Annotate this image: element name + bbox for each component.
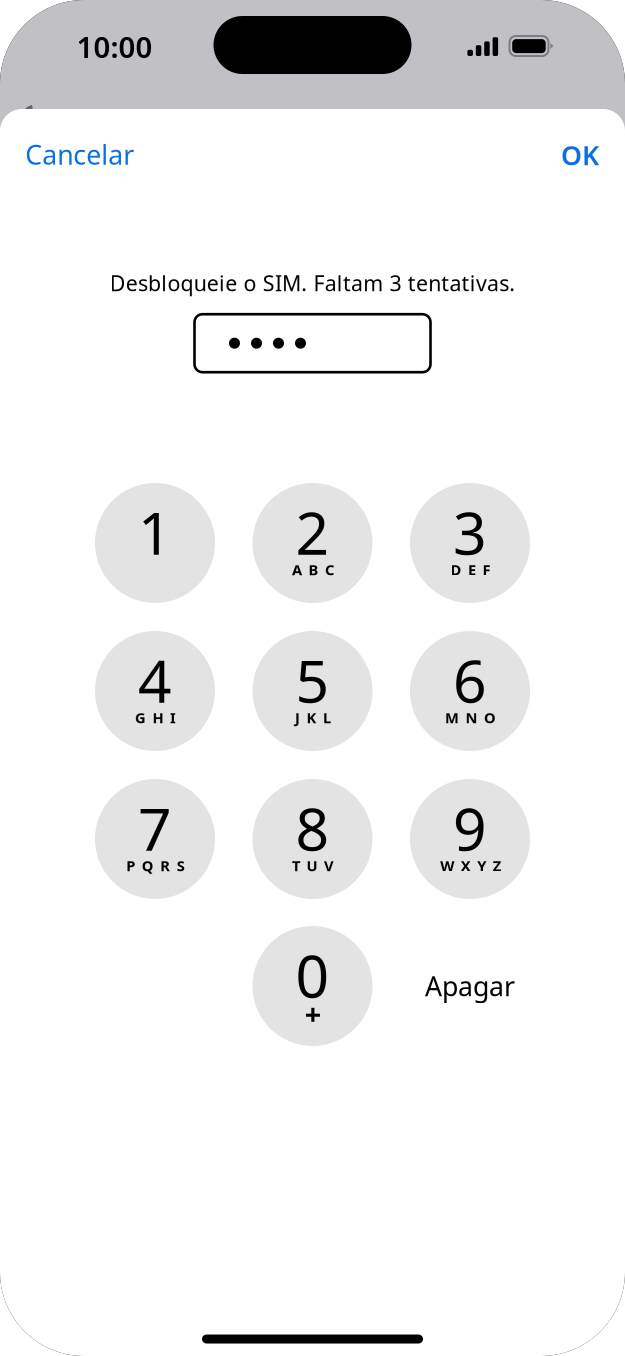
staticText: 9	[453, 789, 487, 867]
staticText: OK	[561, 137, 599, 173]
staticText: GHI	[135, 708, 176, 727]
staticText: MNO	[445, 708, 496, 727]
staticText: 7	[138, 789, 172, 867]
staticText: JKL	[295, 708, 331, 727]
button[interactable]: 2	[252, 483, 372, 603]
staticText: TUV	[292, 856, 334, 875]
staticText: 0	[295, 936, 329, 1014]
button[interactable]: 0	[252, 926, 372, 1046]
button[interactable]: Cancelar	[25, 125, 161, 183]
staticText: Apagar	[425, 968, 515, 1004]
staticText: 2	[295, 493, 329, 571]
staticText: Cancelar	[25, 137, 134, 172]
staticText: PQRS	[126, 856, 185, 875]
staticText: ABC	[292, 560, 334, 579]
button[interactable]: OK	[523, 126, 599, 184]
staticText: 6	[453, 641, 487, 719]
staticText: +	[304, 994, 321, 1033]
button[interactable]: 7	[95, 779, 215, 899]
staticText: 3	[453, 493, 487, 571]
staticText: 8	[295, 789, 329, 867]
staticText: Desbloqueie o SIM. Faltam 3 tentativas.	[110, 269, 515, 297]
staticText: 10:00	[76, 27, 152, 66]
staticText: 5	[295, 641, 329, 719]
button[interactable]: 4	[95, 631, 215, 751]
button[interactable]: 3	[410, 483, 530, 603]
button[interactable]: 8	[252, 779, 372, 899]
button[interactable]: 6	[410, 631, 530, 751]
staticText: DEF	[450, 560, 490, 579]
button[interactable]: 5	[252, 631, 372, 751]
staticText: WXYZ	[440, 856, 501, 875]
staticText: 1	[138, 493, 172, 571]
button[interactable]: Apagar	[395, 946, 545, 1026]
button[interactable]: 9	[410, 779, 530, 899]
button[interactable]: 1	[95, 483, 215, 603]
staticText: 4	[138, 641, 172, 719]
